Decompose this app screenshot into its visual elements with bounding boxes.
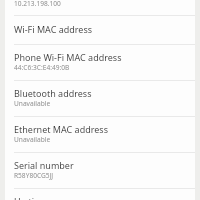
staticText: R58Y80CG5JJ <box>14 171 54 180</box>
button[interactable]: Bluetooth address <box>5 81 195 116</box>
staticText: Phone Wi-Fi MAC address <box>14 51 122 63</box>
button[interactable]: Serial number <box>5 153 195 188</box>
staticText: 10.213.198.100 <box>14 0 61 8</box>
staticText: Up time <box>14 195 48 200</box>
button[interactable]: Phone Wi-Fi MAC address <box>5 45 195 80</box>
staticText: Bluetooth address <box>14 87 92 99</box>
staticText: Unavailable <box>14 135 51 144</box>
button[interactable]: Wi-Fi MAC address <box>5 16 195 44</box>
staticText: Ethernet MAC address <box>14 123 108 135</box>
button[interactable]: Up time <box>5 189 195 200</box>
staticText: Unavailable <box>14 99 51 108</box>
staticText: Wi-Fi MAC address <box>14 23 93 35</box>
button[interactable]: Ethernet MAC address <box>5 117 195 152</box>
staticText: 44:C6:3C:E4:49:0B <box>14 63 70 72</box>
button[interactable]: 10.213.198.100 <box>5 0 195 15</box>
staticText: Serial number <box>14 159 74 171</box>
